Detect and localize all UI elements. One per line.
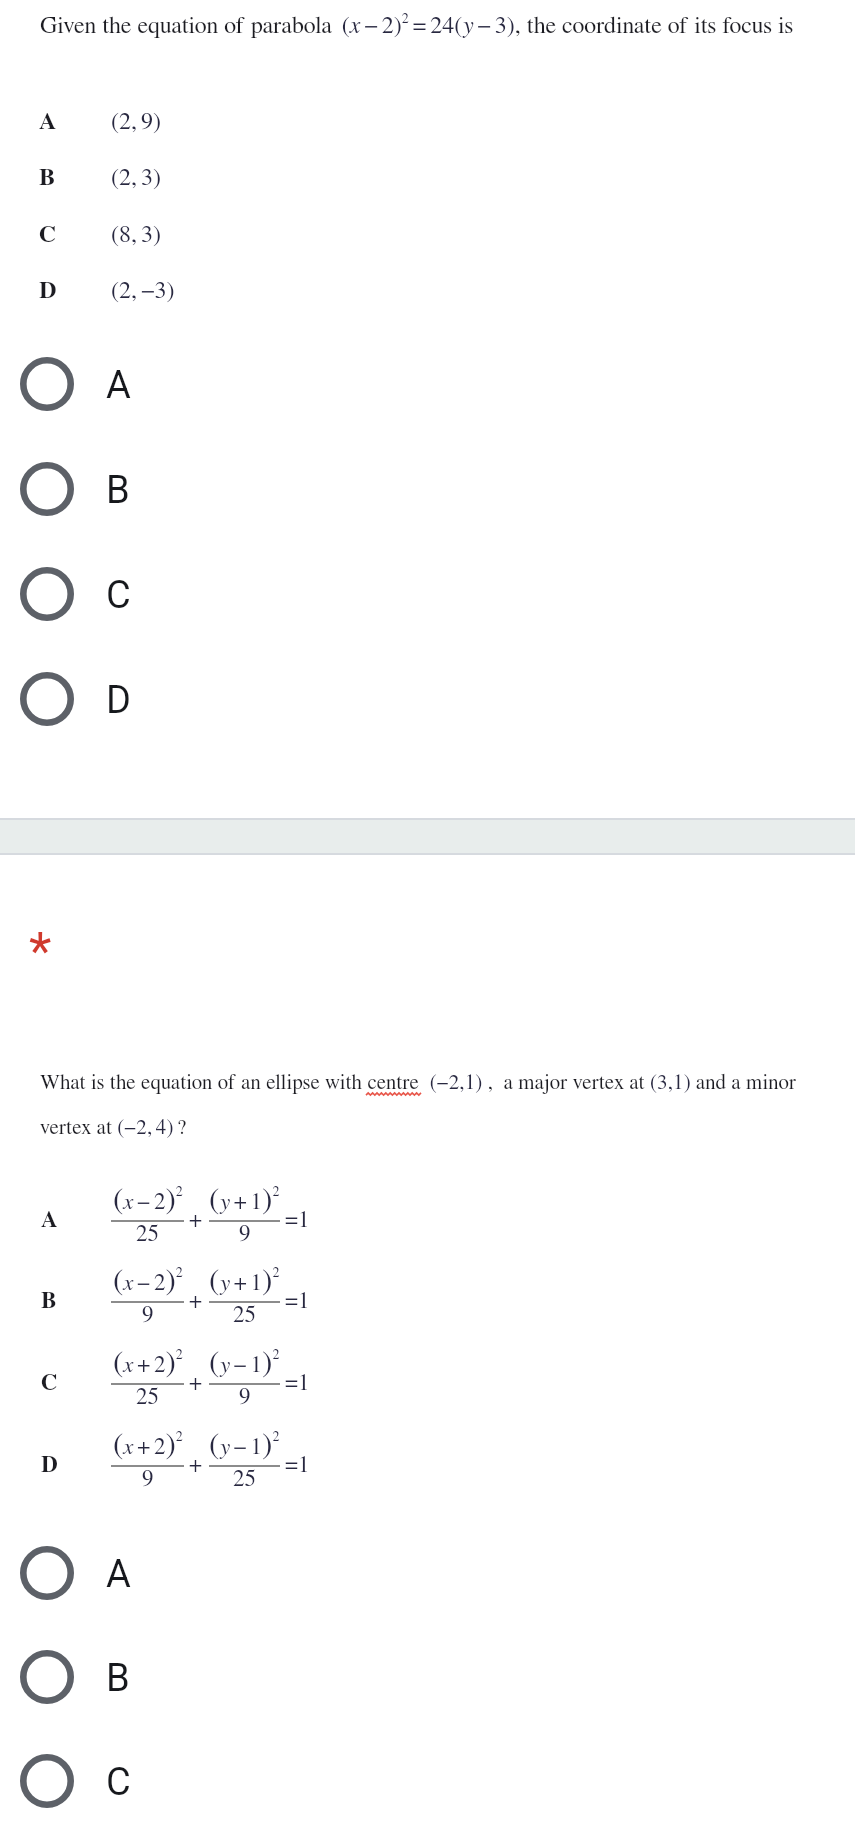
staticText: B <box>106 468 130 513</box>
staticText: C <box>106 573 131 618</box>
button[interactable]: Option A <box>0 1520 855 1625</box>
staticText: A <box>106 363 131 408</box>
staticText: 25 <box>136 1386 159 1409</box>
staticText: + <box>189 1209 202 1232</box>
staticText: B <box>41 1290 57 1313</box>
staticText: (2, −3) <box>111 279 175 303</box>
staticText: B <box>106 1656 130 1701</box>
other: Option D <box>20 672 74 726</box>
staticText: Given the equation of parabola (x − 2)2 … <box>40 12 794 38</box>
staticText: * <box>29 921 52 982</box>
staticText: =1 <box>285 1209 310 1232</box>
staticText: 25 <box>233 1304 256 1327</box>
staticText: vertex at (−2, 4) ? <box>40 1117 187 1138</box>
other: Option A <box>20 357 74 411</box>
staticText: + <box>189 1372 202 1395</box>
staticText: A <box>41 1209 58 1232</box>
button[interactable]: Option C <box>0 1728 855 1833</box>
staticText: + <box>189 1454 202 1477</box>
staticText: 9 <box>142 1468 154 1491</box>
staticText: (x − 2)2 <box>113 1265 183 1296</box>
staticText: (y − 1)2 <box>209 1347 280 1378</box>
staticText: C <box>39 223 56 247</box>
staticText: D <box>106 678 131 723</box>
staticText: =1 <box>285 1290 310 1313</box>
staticText: B <box>39 166 55 190</box>
staticText: 9 <box>239 1386 251 1409</box>
button[interactable]: Option D <box>0 646 855 751</box>
staticText: (y − 1)2 <box>209 1429 280 1460</box>
staticText: A <box>39 110 56 134</box>
staticText: (x − 2)2 <box>113 1184 183 1215</box>
staticText: =1 <box>285 1454 310 1477</box>
other: Option B <box>20 462 74 516</box>
staticText: (y + 1)2 <box>209 1184 280 1215</box>
button[interactable]: Option B <box>0 1624 855 1729</box>
staticText: =1 <box>285 1372 310 1395</box>
staticText: + <box>189 1290 202 1313</box>
staticText: (x + 2)2 <box>113 1347 183 1378</box>
staticText: C <box>41 1372 58 1395</box>
button[interactable]: Option B <box>0 436 855 541</box>
other: Option A <box>20 1546 74 1600</box>
staticText: (2, 9) <box>111 110 161 134</box>
staticText: What is the equation of an ellipse with … <box>40 1072 797 1093</box>
staticText: D <box>39 279 57 303</box>
other: Option C <box>20 1754 74 1808</box>
staticText: (8, 3) <box>111 223 161 247</box>
staticText: C <box>106 1760 131 1805</box>
button[interactable]: Option A <box>0 331 855 436</box>
staticText: 25 <box>233 1468 256 1491</box>
staticText: A <box>106 1552 131 1597</box>
staticText: D <box>41 1454 58 1477</box>
other: Option C <box>20 567 74 621</box>
other: Option B <box>20 1650 74 1704</box>
staticText: 9 <box>239 1223 251 1246</box>
staticText: (2, 3) <box>111 166 161 190</box>
button[interactable]: Option C <box>0 541 855 646</box>
staticText: (x + 2)2 <box>113 1429 183 1460</box>
staticText: 25 <box>136 1223 159 1246</box>
staticText: 9 <box>142 1304 154 1327</box>
staticText: (y + 1)2 <box>209 1265 280 1296</box>
